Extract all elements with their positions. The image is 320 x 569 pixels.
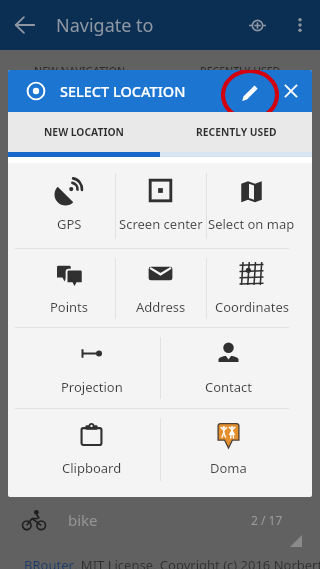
staticText: RECENTLY USED [200,64,281,78]
staticText: NEW LOCATION [44,125,124,139]
staticText: , MIT License, Copyright (c) 2016 Norber… [74,556,320,569]
staticText: Select on map [208,215,295,233]
button[interactable]: Screen center [115,163,206,248]
staticText: SELECT LOCATION [60,81,186,101]
button[interactable]: Back [0,0,50,50]
staticText: Projection [61,378,123,396]
button[interactable]: GPS [23,163,115,248]
staticText: BRouter [24,556,74,569]
button[interactable]: Projection [23,328,160,408]
staticText: 2 / 17 [251,512,283,528]
button[interactable]: Address [115,249,206,327]
button[interactable]: Contact [160,328,297,408]
button[interactable]: Select on map [206,163,297,248]
staticText: Contact [205,378,253,396]
staticText: Navigate to [56,13,154,38]
button[interactable]: Close [271,71,311,111]
staticText: Coordinates [215,298,289,316]
button[interactable]: Doma [160,409,297,490]
staticText: Address [136,298,186,316]
staticText: NEW NAVIGATION [34,64,126,78]
button[interactable]: Points [23,249,115,327]
staticText: Doma [210,459,247,477]
staticText: Clipboard [62,459,122,477]
staticText: RECENTLY USED [196,125,277,139]
button[interactable]: Clipboard [23,409,160,490]
staticText: Points [50,298,89,316]
button[interactable]: Edit [229,70,271,112]
button[interactable]: Locate position [234,2,280,48]
staticText: bike [68,510,98,530]
button[interactable]: NEW LOCATION [8,112,160,152]
button[interactable]: bike [0,505,320,535]
button[interactable]: Coordinates [206,249,297,327]
button[interactable]: More options [280,5,320,45]
staticText: GPS [57,215,82,233]
staticText: Screen center [119,215,203,233]
button[interactable]: RECENTLY USED [160,112,312,152]
